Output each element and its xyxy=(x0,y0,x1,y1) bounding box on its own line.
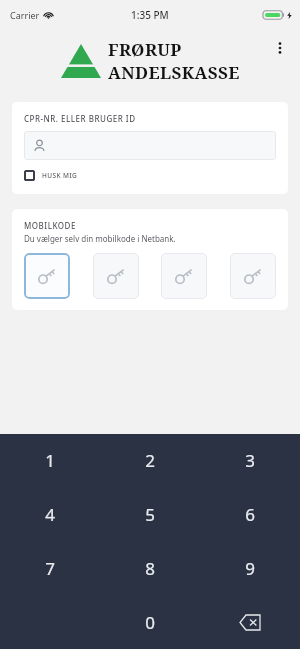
button[interactable]: 5 xyxy=(100,487,200,541)
button[interactable]: Mobilkode digit xyxy=(93,253,139,299)
staticText: 8 xyxy=(145,557,155,580)
staticText: FRØRUP xyxy=(108,38,182,61)
button[interactable]: 8 xyxy=(100,541,200,595)
button[interactable] xyxy=(24,131,276,160)
staticText: 4 xyxy=(45,503,55,526)
button[interactable]: 7 xyxy=(0,541,100,595)
button[interactable]: Mobilkode digit xyxy=(24,253,70,299)
button[interactable]: 6 xyxy=(200,487,300,541)
staticText: MOBILKODE xyxy=(24,220,76,231)
button[interactable]: 2 xyxy=(100,434,200,487)
staticText: HUSK MIG xyxy=(42,171,78,180)
staticText: 6 xyxy=(245,503,255,526)
button[interactable]: More options xyxy=(266,34,294,62)
staticText: 2 xyxy=(145,449,155,472)
staticText: Carrier xyxy=(10,9,40,21)
staticText: CPR-NR. ELLER BRUGER ID xyxy=(24,113,136,124)
staticText: 1:35 PM xyxy=(131,8,169,22)
staticText: Du vælger selv din mobilkode i Netbank. xyxy=(24,233,176,244)
button[interactable]: 3 xyxy=(200,434,300,487)
staticText: 5 xyxy=(145,503,155,526)
staticText: 0 xyxy=(145,611,155,634)
button[interactable]: 4 xyxy=(0,487,100,541)
staticText: 7 xyxy=(45,557,55,580)
button[interactable]: Mobilkode digit xyxy=(230,253,276,299)
button[interactable]: 1 xyxy=(0,434,100,487)
staticText: 1 xyxy=(45,449,55,472)
button[interactable]: Delete xyxy=(200,595,300,649)
staticText: 9 xyxy=(245,557,255,580)
button[interactable]: HUSK MIG xyxy=(24,168,78,183)
button[interactable]: 0 xyxy=(100,595,200,649)
staticText: ANDELSKASSE xyxy=(108,61,240,84)
button[interactable]: 9 xyxy=(200,541,300,595)
staticText: 3 xyxy=(245,449,255,472)
button[interactable]: Mobilkode digit xyxy=(161,253,207,299)
